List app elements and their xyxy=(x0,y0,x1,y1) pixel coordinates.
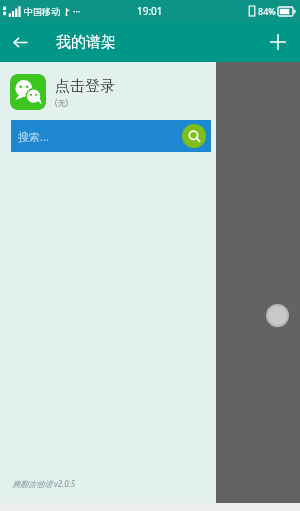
staticText: 爽翻吉他谱 v2.0.5 xyxy=(12,478,76,489)
button[interactable]: Add xyxy=(256,22,300,62)
staticText: 84% xyxy=(258,5,276,17)
button[interactable]: Back xyxy=(0,22,40,62)
button[interactable]: 点击登录 xyxy=(10,74,210,110)
button[interactable]: Handle xyxy=(268,306,287,325)
staticText: 我的谱架 xyxy=(56,33,116,52)
button[interactable]: Search xyxy=(182,124,206,148)
button[interactable]: 搜索... xyxy=(11,120,211,152)
staticText: 中国移动 xyxy=(24,6,60,17)
staticText: 点击登录 xyxy=(55,77,115,96)
staticText: 19:01 xyxy=(137,4,163,18)
staticText: (无) xyxy=(55,97,68,108)
button[interactable]: Close drawer xyxy=(216,62,300,503)
staticText: 搜索... xyxy=(18,129,49,144)
staticText: ··· xyxy=(73,5,81,17)
